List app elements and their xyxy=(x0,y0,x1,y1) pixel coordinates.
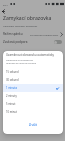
button[interactable]: 30 sekund xyxy=(3,76,63,84)
staticText: Zrušit xyxy=(29,123,37,127)
button[interactable]: Back xyxy=(1,9,6,14)
staticText: Po uplynutí zvolené doby xyxy=(30,33,59,36)
button[interactable]: 10 minut xyxy=(3,108,63,116)
staticText: Režim spánku xyxy=(3,32,23,36)
button[interactable]: 15 sekund xyxy=(3,68,63,76)
button[interactable]: 1 minuta xyxy=(3,84,63,92)
button[interactable]: Režim spánku xyxy=(0,30,65,38)
staticText: 10 minut xyxy=(6,110,59,114)
staticText: Obrazovka se automaticky uzamkne po uply… xyxy=(6,59,37,65)
staticText: Zvuková podpora xyxy=(3,40,28,44)
staticText: 1 minuta xyxy=(6,86,56,90)
button[interactable]: 2 minuty xyxy=(3,92,63,100)
staticText: Zamykací obrazovka xyxy=(3,15,52,22)
staticText: 30 sekund xyxy=(6,78,59,82)
button[interactable]: Zvuková podpora xyxy=(0,38,65,46)
staticText: Nastavení zamykací obrazovky xyxy=(3,24,38,27)
button[interactable]: 5 minut xyxy=(3,100,63,108)
staticText: 9:41 xyxy=(3,3,8,6)
button[interactable]: Zrušit xyxy=(3,116,63,134)
staticText: Uzamknout obrazovku automaticky xyxy=(6,53,55,57)
staticText: 5 minut xyxy=(6,102,59,106)
staticText: 2 minuty xyxy=(6,94,59,98)
button[interactable]: Toggle xyxy=(54,40,62,44)
staticText: 15 sekund xyxy=(6,70,59,74)
